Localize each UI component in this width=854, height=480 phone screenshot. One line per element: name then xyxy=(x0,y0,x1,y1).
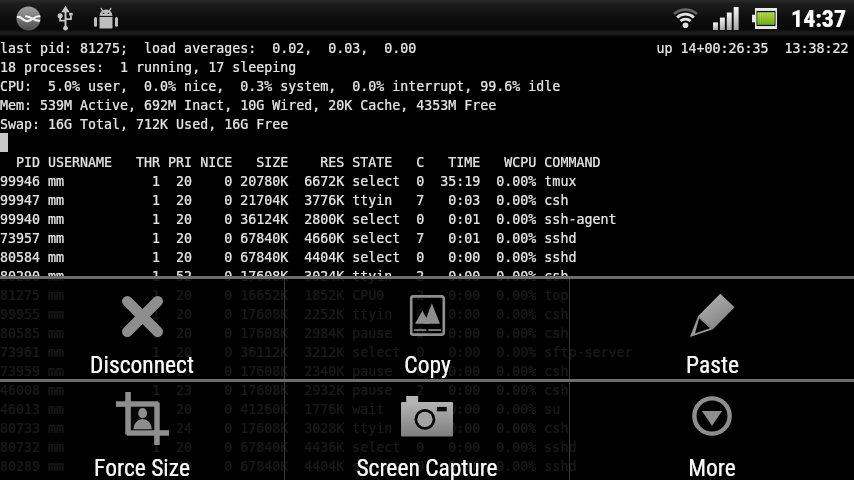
staticText: 73959 mm 1 20 0 17608K 2340K pause 0 0:0… xyxy=(0,364,569,379)
staticText: 80585 mm 1 20 0 17608K 2984K pause 0 0:0… xyxy=(0,326,569,341)
button[interactable]: Copy xyxy=(285,279,569,379)
staticText: 73961 mm 1 20 0 36112K 3212K select 0 0:… xyxy=(0,345,633,360)
staticText: 99955 mm 1 20 0 17608K 2252K ttyin 0 0:0… xyxy=(0,307,569,322)
button[interactable]: Disconnect xyxy=(0,279,284,379)
staticText: 80733 mm 1 24 0 17608K 3028K ttyin 0 0:0… xyxy=(0,421,569,436)
staticText: Force Size xyxy=(94,454,190,480)
staticText: Mem: 539M Active, 692M Inact, 10G Wired,… xyxy=(0,98,497,113)
staticText: More xyxy=(688,454,736,480)
staticText: 46008 mm 1 23 0 17608K 2932K pause 2 0:0… xyxy=(0,383,569,398)
staticText: Swap: 16G Total, 712K Used, 16G Free xyxy=(0,117,289,132)
staticText: 99940 mm 1 20 0 36124K 2800K select 0 0:… xyxy=(0,212,617,227)
staticText: PID USERNAME THR PRI NICE SIZE RES STATE… xyxy=(0,155,601,170)
staticText: 99946 mm 1 20 0 20780K 6672K select 0 35… xyxy=(0,174,577,189)
staticText: 73957 mm 1 20 0 67840K 4660K select 7 0:… xyxy=(0,231,577,246)
staticText: 81275 mm 1 20 0 16652K 1852K CPU0 2 0:00… xyxy=(0,288,569,303)
button[interactable]: Screen Capture xyxy=(285,382,569,480)
staticText: 80732 mm 1 20 0 67840K 4436K select 0 0:… xyxy=(0,440,577,455)
staticText: Screen Capture xyxy=(356,454,498,480)
staticText: 80289 mm 1 20 0 67840K 4404K select 0 0:… xyxy=(0,459,577,474)
staticText: Paste xyxy=(686,351,739,379)
staticText: 80290 mm 1 52 0 17608K 3024K ttyin 2 0:0… xyxy=(0,269,569,284)
staticText: 18 processes: 1 running, 17 sleeping xyxy=(0,60,297,75)
staticText: 14:37 xyxy=(791,5,847,33)
staticText: last pid: 81275; load averages: 0.02, 0.… xyxy=(0,41,849,56)
staticText: Copy xyxy=(404,351,451,379)
button[interactable]: Paste xyxy=(570,279,854,379)
staticText: 99947 mm 1 20 0 21704K 3776K ttyin 7 0:0… xyxy=(0,193,569,208)
staticText: 80584 mm 1 20 0 67840K 4404K select 0 0:… xyxy=(0,250,577,265)
button[interactable]: More xyxy=(570,382,854,480)
button[interactable]: Force Size xyxy=(0,382,284,480)
staticText: CPU: 5.0% user, 0.0% nice, 0.3% system, … xyxy=(0,79,561,94)
staticText: 46013 mm 1 20 0 41260K 1776K wait 0 0:00… xyxy=(0,402,561,417)
staticText: Disconnect xyxy=(90,351,194,379)
